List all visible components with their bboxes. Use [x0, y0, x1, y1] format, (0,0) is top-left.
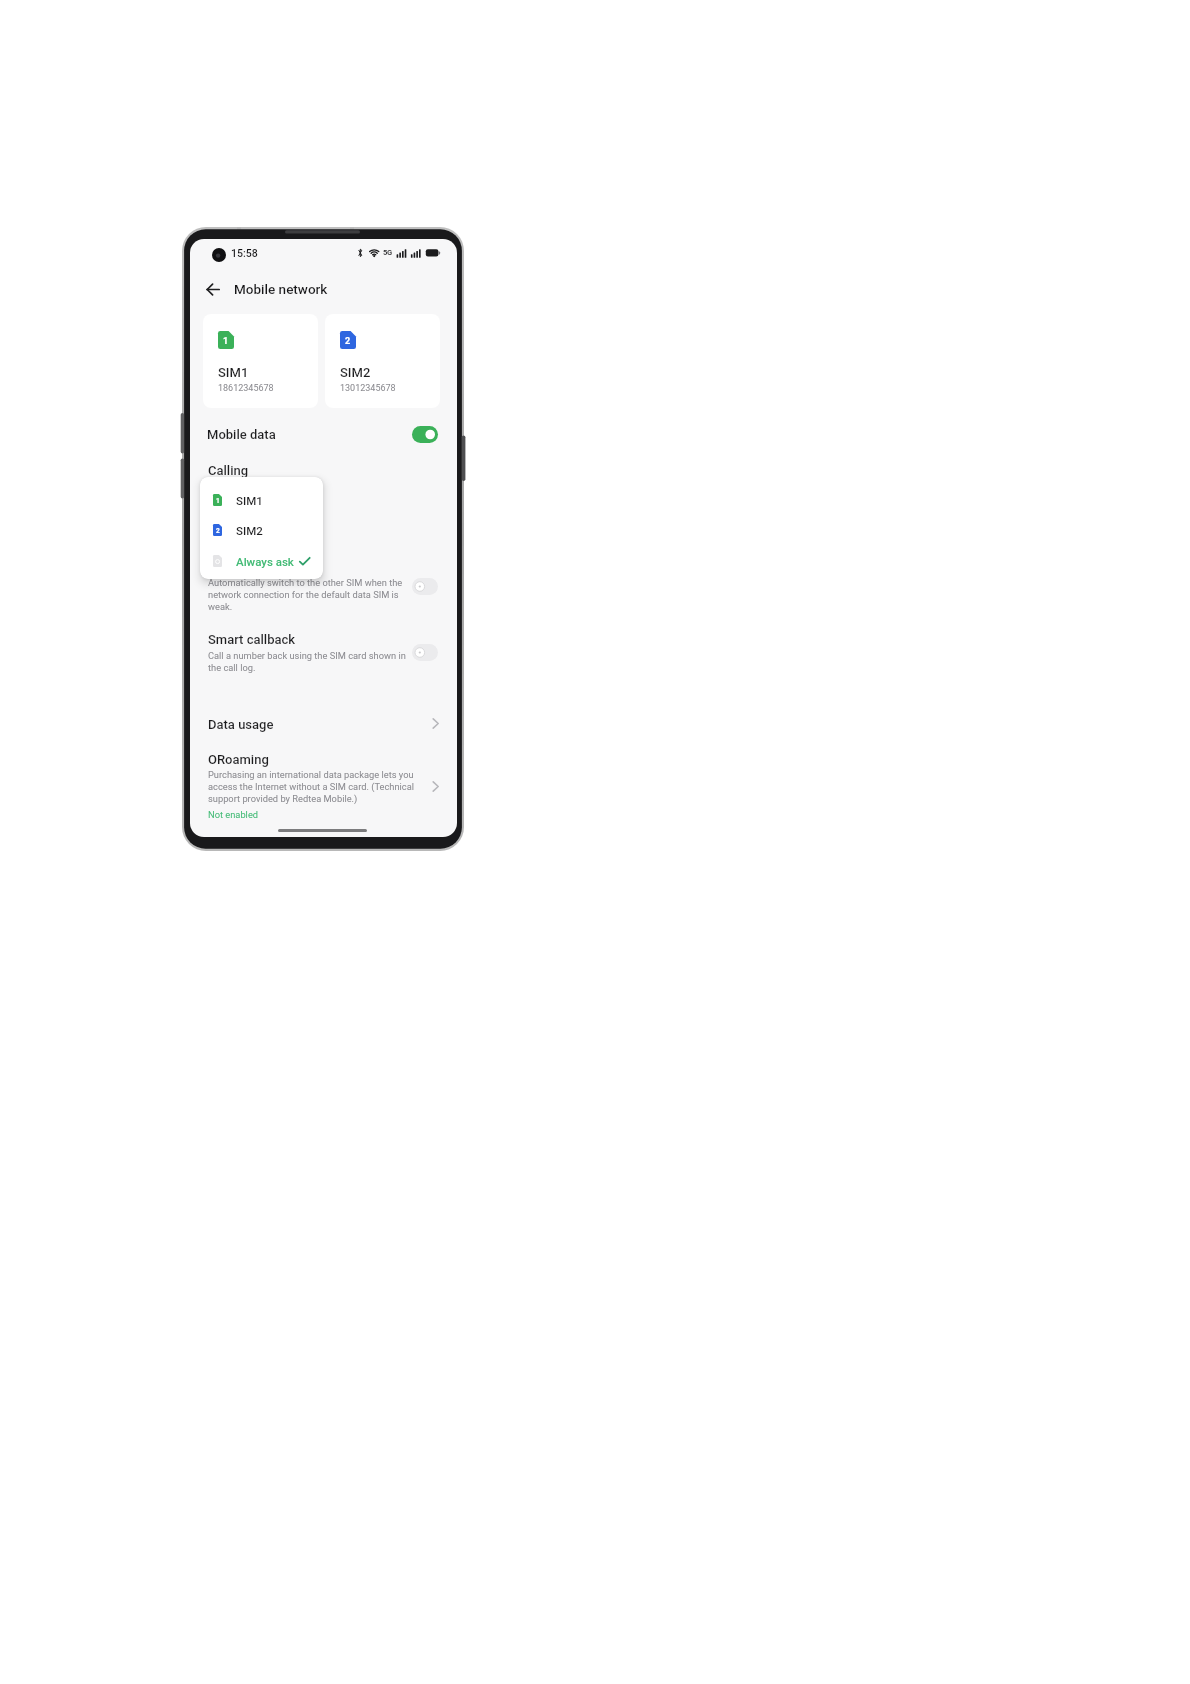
staticText: 13012345678 — [340, 383, 396, 394]
staticText: Calling — [208, 463, 249, 478]
button[interactable] — [190, 631, 457, 676]
staticText: Call a number back using the SIM card sh… — [208, 650, 406, 673]
staticText: 1 — [223, 336, 229, 347]
button[interactable] — [204, 281, 222, 298]
staticText: 18612345678 — [218, 383, 274, 394]
staticText: Smart callback — [208, 632, 296, 647]
staticText: Data usage — [208, 717, 274, 732]
button[interactable]: 2 — [325, 314, 440, 408]
staticText: SIM1 — [218, 365, 249, 380]
staticText: Automatically switch to the other SIM wh… — [208, 577, 403, 612]
staticText: Mobile data — [207, 427, 276, 442]
button[interactable]: Always ask — [200, 545, 323, 576]
staticText: 1 — [216, 497, 220, 505]
staticText: Purchasing an international data package… — [208, 769, 414, 804]
button[interactable]: 2 — [200, 514, 323, 545]
staticText: Always ask — [236, 555, 294, 568]
button[interactable] — [412, 644, 438, 661]
button[interactable] — [412, 426, 438, 443]
staticText: 2 — [345, 336, 351, 347]
staticText: SIM2 — [236, 524, 263, 537]
button[interactable] — [190, 424, 457, 446]
staticText: 15:58 — [231, 247, 258, 259]
staticText: 2 — [216, 527, 220, 535]
staticText: SIM1 — [236, 494, 263, 507]
staticText: Mobile network — [234, 281, 328, 297]
staticText: ORoaming — [208, 752, 269, 767]
button[interactable]: 1 — [200, 484, 323, 515]
button[interactable]: 1 — [203, 314, 318, 408]
button[interactable] — [412, 578, 438, 595]
staticText: SIM2 — [340, 365, 371, 380]
button[interactable] — [190, 747, 457, 819]
staticText: 5G — [383, 248, 392, 257]
staticText: Not enabled — [208, 809, 259, 820]
button[interactable] — [190, 711, 457, 737]
